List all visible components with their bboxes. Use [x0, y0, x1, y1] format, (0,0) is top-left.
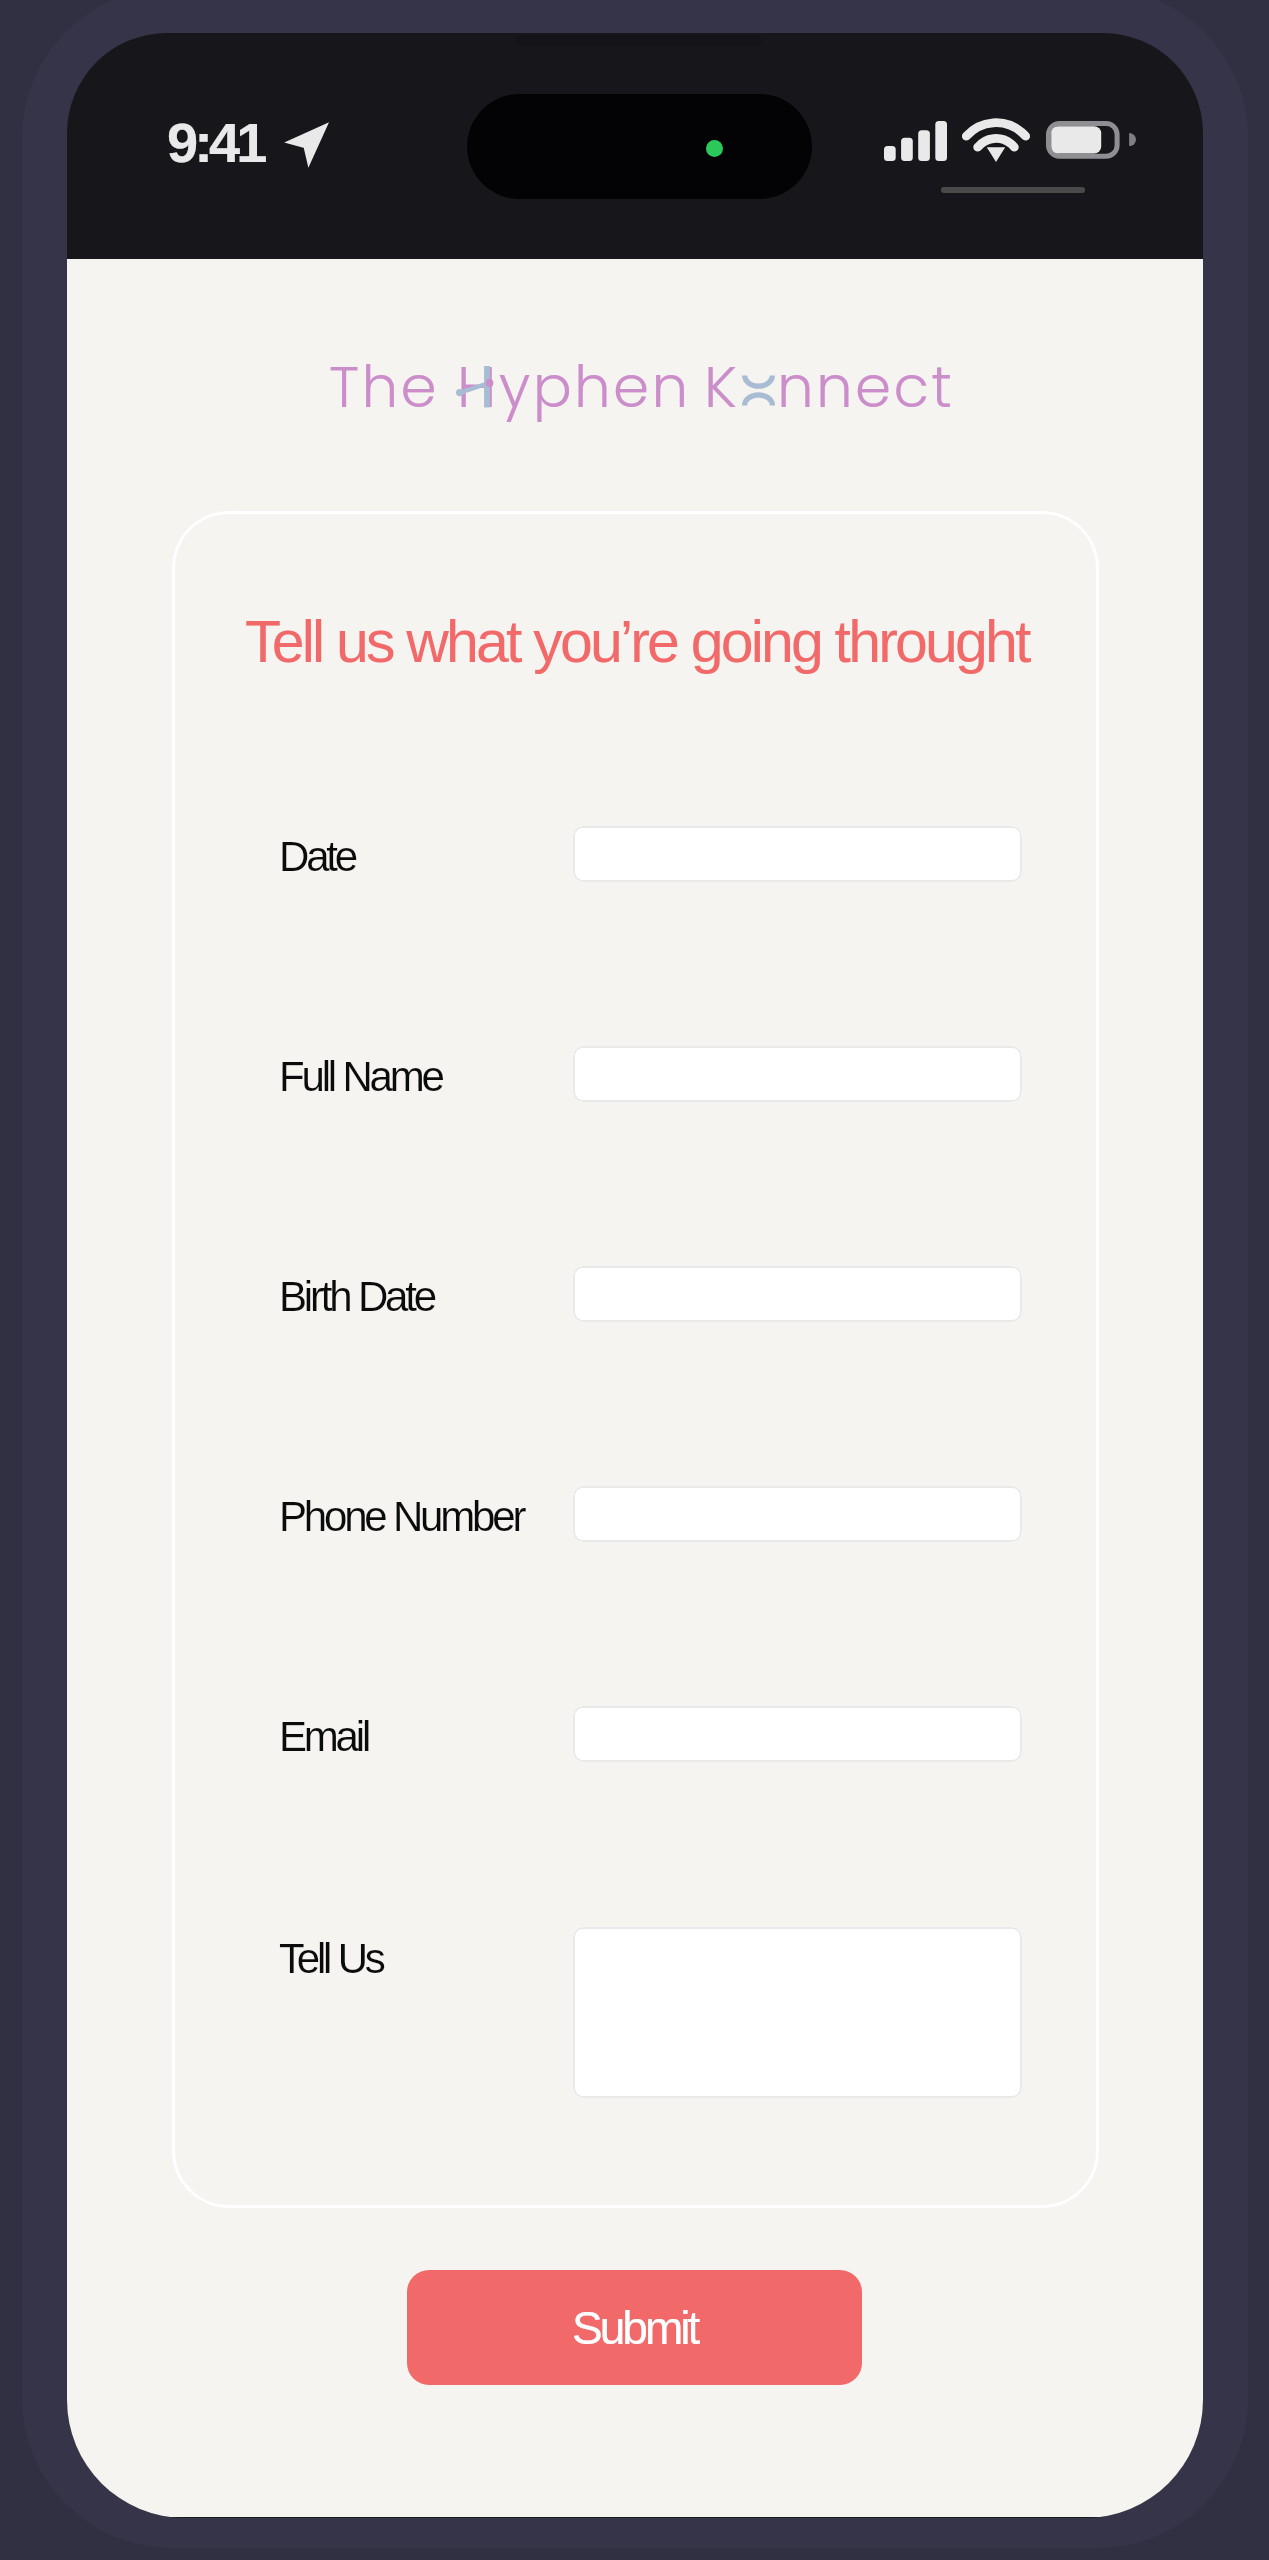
other: Cellular signal: [884, 121, 947, 161]
staticText: The Hyphen: [329, 346, 691, 427]
button[interactable]: [573, 826, 1022, 882]
staticText: Email: [279, 1713, 369, 1760]
other: Wi-Fi: [966, 84, 1026, 164]
staticText: Phone Number: [279, 1493, 524, 1540]
other: Battery: [1046, 121, 1130, 159]
staticText: nnect: [777, 346, 955, 427]
other: Location: [291, 127, 324, 160]
button[interactable]: [573, 1927, 1022, 2098]
button[interactable]: [573, 1046, 1022, 1102]
button[interactable]: Submit: [407, 2270, 862, 2385]
staticText: Submit: [572, 2302, 698, 2353]
button[interactable]: [573, 1266, 1022, 1322]
button[interactable]: [573, 1486, 1022, 1542]
staticText: 9:41: [167, 111, 264, 174]
staticText: Date: [279, 833, 355, 880]
staticText: Full Name: [279, 1053, 442, 1100]
staticText: Tell Us: [279, 1935, 383, 1982]
staticText: Tell us what you’re going throught: [245, 609, 1029, 675]
staticText: K: [704, 346, 740, 427]
button[interactable]: [573, 1706, 1022, 1762]
staticText: Birth Date: [279, 1273, 434, 1320]
